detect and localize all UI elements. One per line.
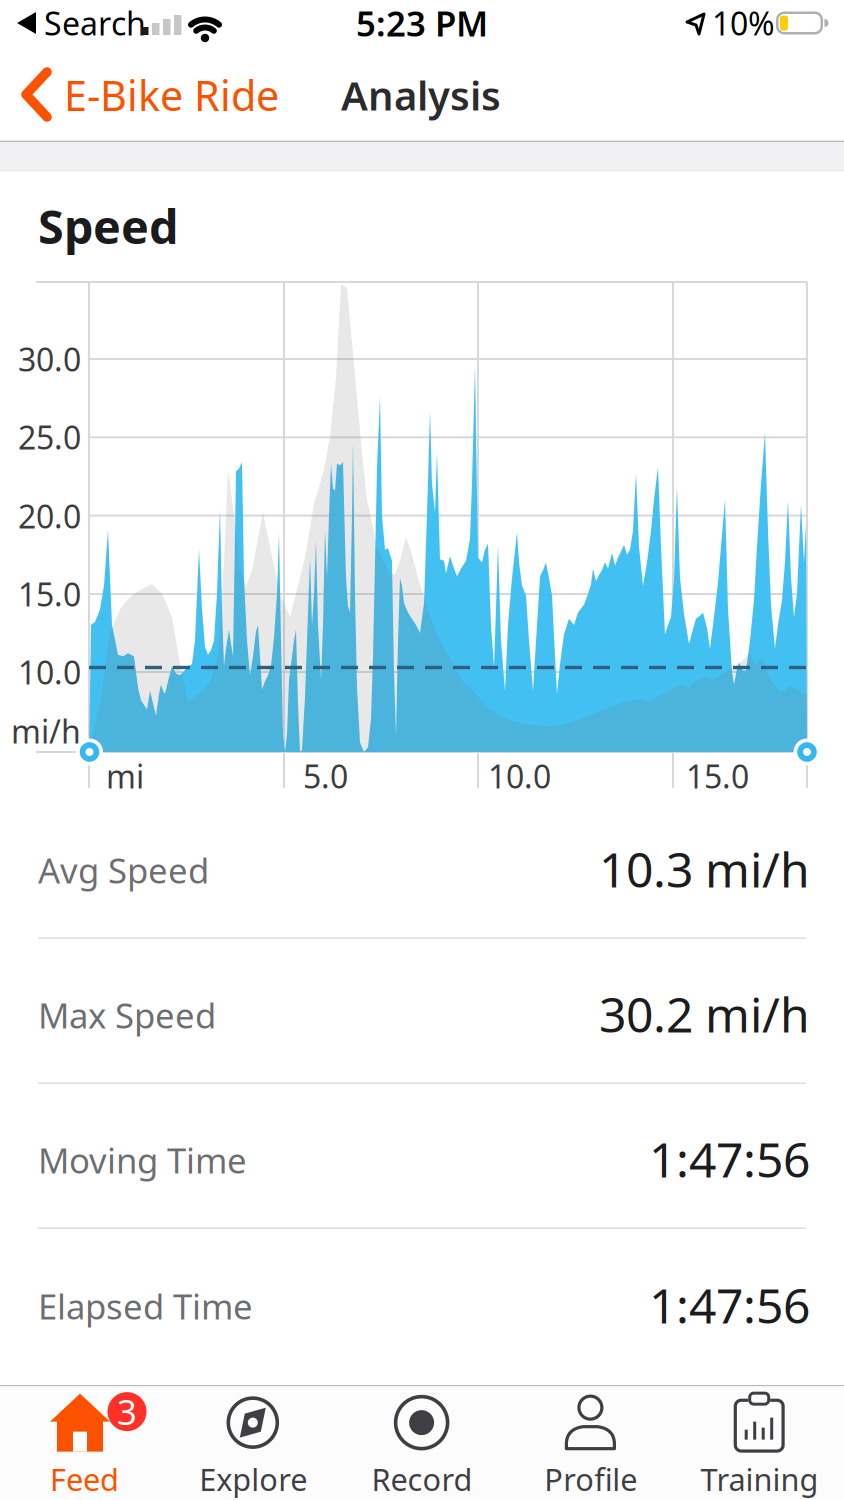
staticText: Record [371,1459,472,1499]
staticText: Elapsed Time [38,1283,253,1329]
staticText: 10.3 mi/h [599,837,810,901]
button[interactable]: Record [338,1387,506,1500]
staticText: Max Speed [38,992,216,1038]
button[interactable]: 3 [0,1387,169,1500]
staticText: Analysis [341,68,501,121]
staticText: 10.0 [488,755,551,797]
staticText: Speed [38,195,178,257]
staticText: 10% [712,2,775,44]
button[interactable]: Profile [506,1387,675,1500]
staticText: 10.0 [18,651,81,693]
staticText: 1:47:56 [649,1273,810,1337]
staticText: 5:23 PM [356,0,488,46]
staticText: 15.0 [686,755,749,797]
staticText: Avg Speed [38,847,209,893]
button[interactable]: Training [675,1387,844,1500]
staticText: Profile [544,1459,637,1499]
staticText: Moving Time [38,1137,247,1183]
button[interactable]: Explore [169,1387,338,1500]
staticText: Search [44,2,146,44]
staticText: 20.0 [18,495,81,537]
staticText: 5.0 [303,755,348,797]
button[interactable]: E-Bike Ride [20,64,350,126]
staticText: 30.2 mi/h [599,982,810,1046]
staticText: mi [106,755,144,797]
staticText: mi/h [11,710,81,752]
staticText: 3 [117,1389,137,1435]
staticText: Explore [199,1459,307,1499]
staticText: 15.0 [18,573,81,615]
staticText: 30.0 [18,338,81,380]
staticText: Feed [50,1459,119,1499]
staticText: 25.0 [18,416,81,458]
staticText: E-Bike Ride [64,68,279,122]
staticText: Training [701,1459,819,1499]
staticText: 1:47:56 [649,1127,810,1191]
